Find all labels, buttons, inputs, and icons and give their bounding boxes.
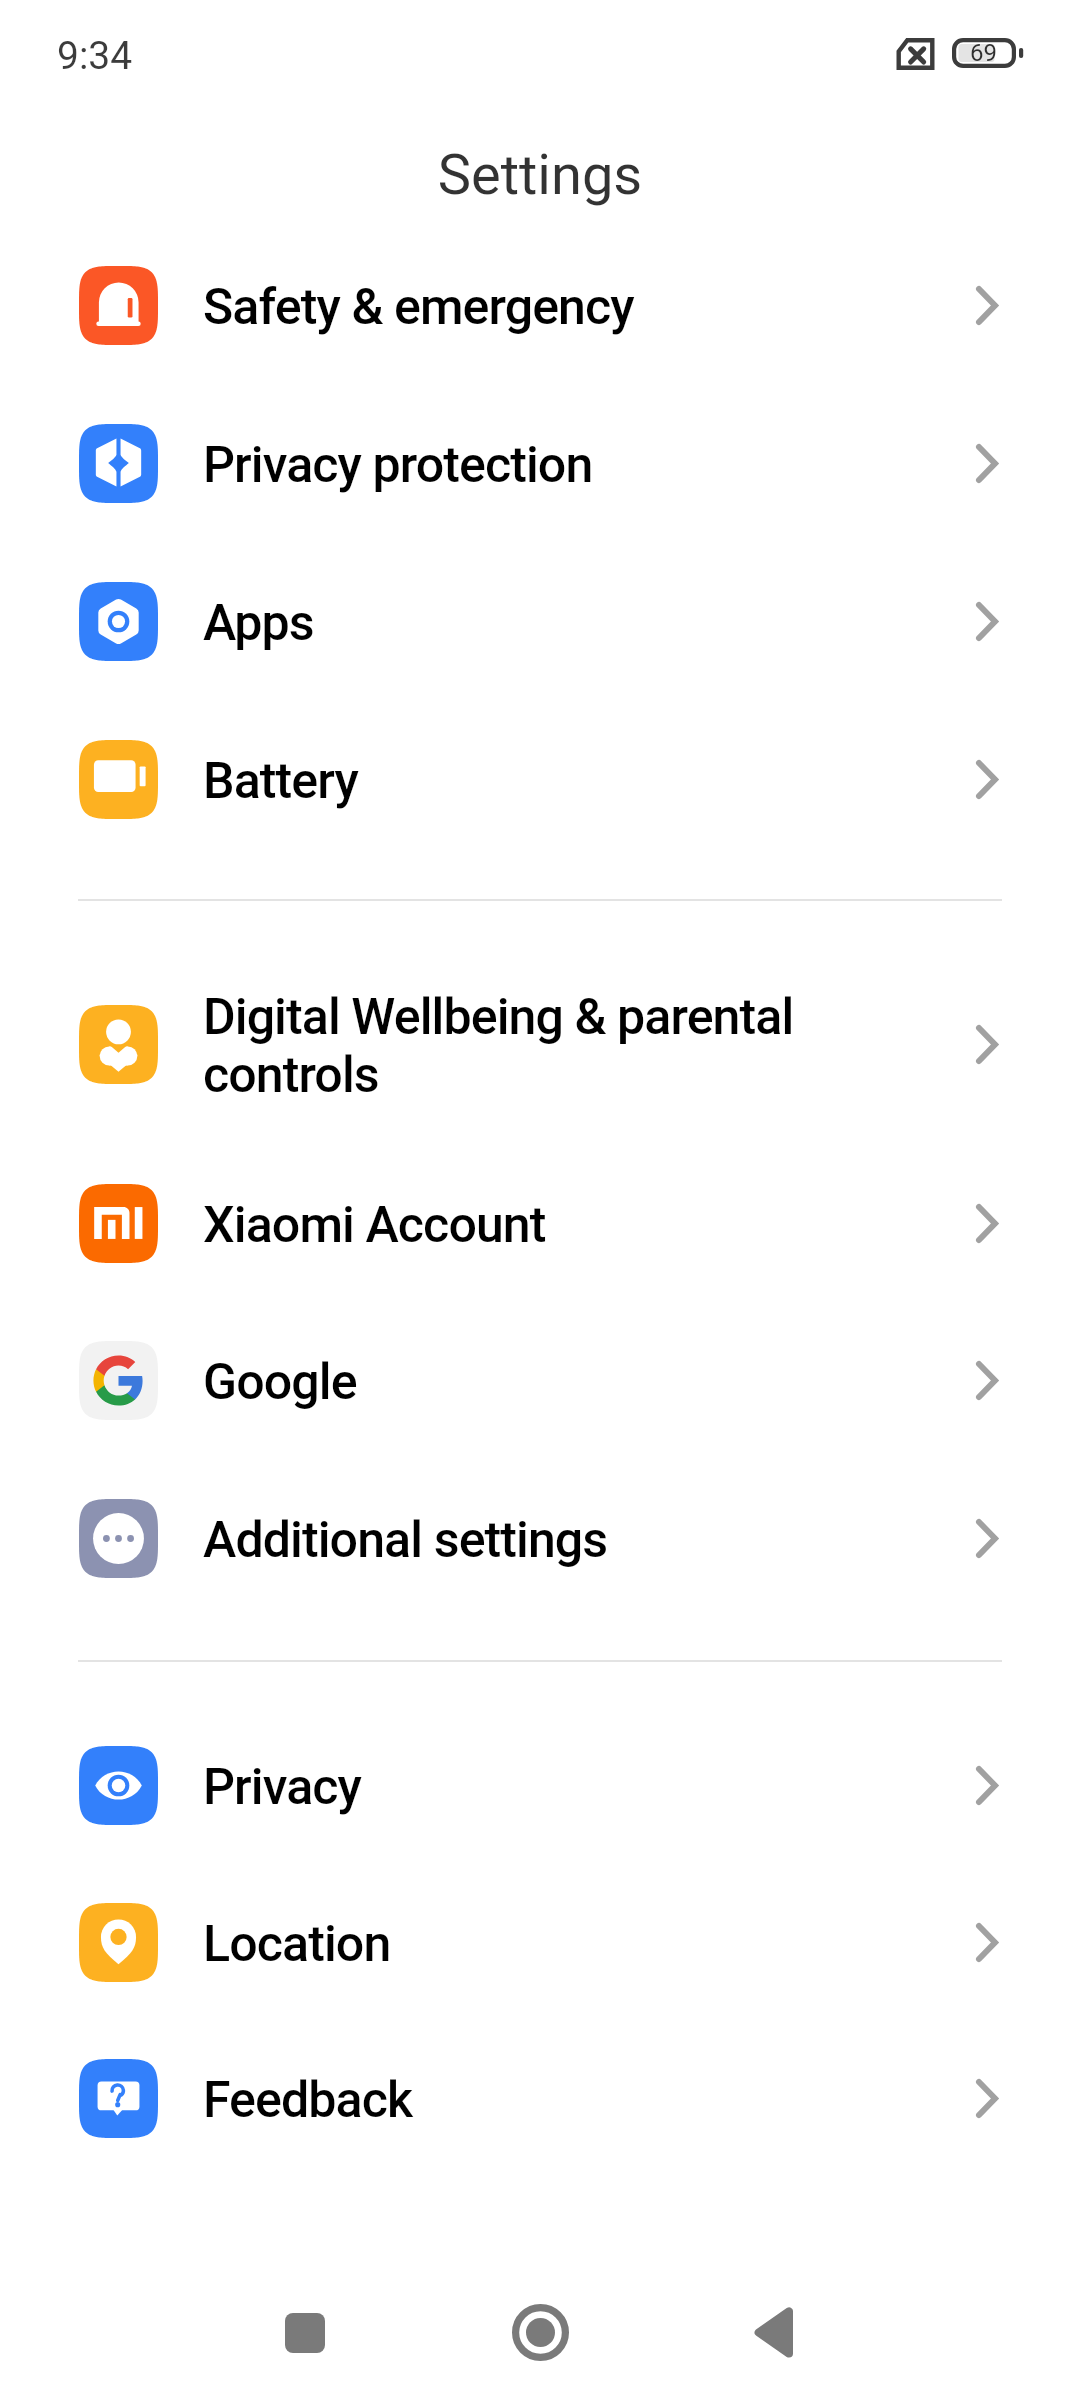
button[interactable]: Apps — [0, 542, 1080, 700]
button[interactable]: Privacy protection — [0, 384, 1080, 542]
staticText: Feedback — [203, 2071, 976, 2130]
button[interactable]: Feedback — [0, 2019, 1080, 2177]
button[interactable]: Recents — [245, 2265, 365, 2400]
button[interactable]: Location — [0, 1863, 1080, 2021]
button[interactable]: Digital Wellbeing & parental controls — [0, 965, 1080, 1123]
staticText: Xiaomi Account — [203, 1196, 976, 1255]
button[interactable]: Safety & emergency — [0, 226, 1080, 384]
button[interactable]: Back — [714, 2265, 834, 2400]
staticText: Privacy protection — [203, 436, 976, 495]
button[interactable]: Home — [480, 2265, 600, 2400]
button[interactable]: Additional settings — [0, 1459, 1080, 1617]
staticText: Location — [203, 1915, 976, 1974]
staticText: Additional settings — [203, 1511, 976, 1570]
staticText: Safety & emergency — [203, 278, 976, 337]
staticText: Privacy — [203, 1758, 976, 1817]
button[interactable]: Battery — [0, 700, 1080, 858]
staticText: Battery — [203, 752, 976, 811]
staticText: Google — [203, 1353, 976, 1412]
staticText: 69 — [970, 39, 997, 67]
staticText: Digital Wellbeing & parental controls — [203, 988, 976, 1104]
button[interactable]: Google — [0, 1301, 1080, 1459]
staticText: 9:34 — [57, 33, 133, 79]
staticText: Apps — [203, 594, 976, 653]
button[interactable]: Xiaomi Account — [0, 1144, 1080, 1302]
button[interactable]: Privacy — [0, 1706, 1080, 1864]
staticText: Settings — [0, 142, 1080, 208]
